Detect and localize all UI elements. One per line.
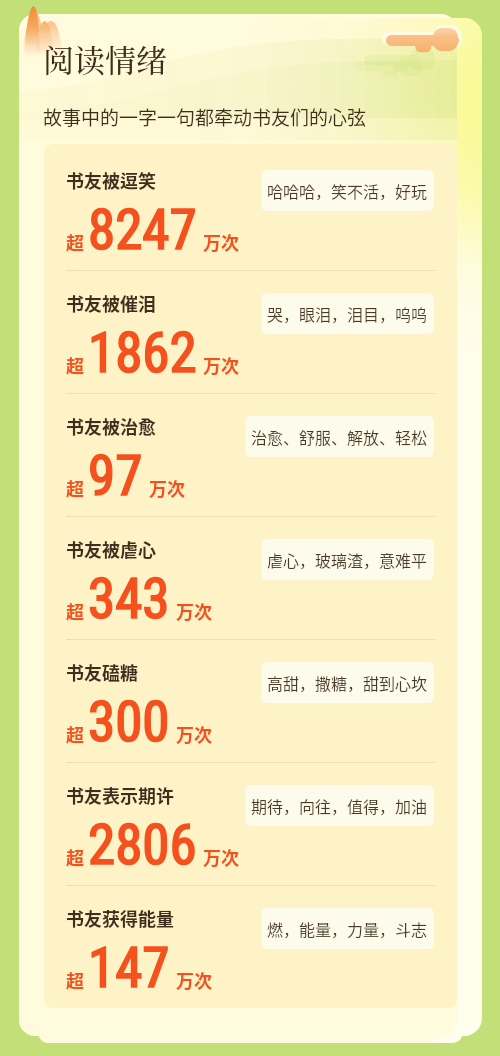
staticText: 哭，眼泪，泪目，呜呜 — [267, 302, 428, 325]
staticText: 故事中的一字一句都牵动书友们的心弦 — [43, 103, 367, 131]
staticText: 高甜，撒糖，甜到心坎 — [267, 671, 428, 694]
staticText: 哈哈哈，笑不活，好玩 — [267, 179, 428, 202]
staticText: 300 — [88, 690, 170, 754]
staticText: 2806 — [88, 813, 197, 877]
staticText: 1862 — [88, 321, 197, 385]
staticText: 书友磕糖 — [66, 659, 138, 685]
staticText: 书友获得能量 — [66, 905, 174, 931]
staticText: 书友被虐心 — [66, 536, 156, 562]
staticText: 阅读情绪 — [43, 36, 167, 81]
staticText: 超 — [66, 475, 84, 501]
button[interactable]: 书友表示期许 — [44, 763, 457, 885]
staticText: 超 — [66, 598, 84, 624]
staticText: 147 — [88, 936, 170, 1000]
staticText: 万次 — [149, 475, 185, 501]
staticText: 万次 — [203, 229, 239, 255]
staticText: 期待，向往，值得，加油 — [251, 794, 428, 817]
staticText: 万次 — [176, 721, 212, 747]
staticText: 超 — [66, 229, 84, 255]
staticText: 书友被催泪 — [66, 290, 156, 316]
staticText: 书友被逗笑 — [66, 167, 156, 193]
staticText: 万次 — [203, 352, 239, 378]
button[interactable]: 书友磕糖 — [44, 640, 457, 762]
staticText: 燃，能量，力量，斗志 — [267, 917, 428, 940]
staticText: 治愈、舒服、解放、轻松 — [251, 425, 428, 448]
staticText: 超 — [66, 967, 84, 993]
staticText: 万次 — [203, 844, 239, 870]
staticText: 书友被治愈 — [66, 413, 156, 439]
staticText: 万次 — [176, 598, 212, 624]
button[interactable]: 书友被虐心 — [44, 517, 457, 639]
button[interactable]: 书友被逗笑 — [44, 148, 457, 270]
staticText: 8247 — [88, 198, 197, 262]
staticText: 超 — [66, 844, 84, 870]
staticText: 超 — [66, 352, 84, 378]
button[interactable]: 书友被催泪 — [44, 271, 457, 393]
staticText: 虐心，玻璃渣，意难平 — [267, 548, 428, 571]
staticText: 超 — [66, 721, 84, 747]
staticText: 书友表示期许 — [66, 782, 174, 808]
staticText: 万次 — [176, 967, 212, 993]
button[interactable]: 书友获得能量 — [44, 886, 457, 1008]
button[interactable]: 书友被治愈 — [44, 394, 457, 516]
staticText: 97 — [88, 444, 143, 508]
staticText: 343 — [88, 567, 170, 631]
